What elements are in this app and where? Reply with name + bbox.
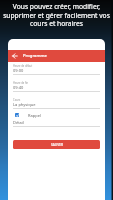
staticText: La physique	[13, 102, 36, 107]
staticText: Vous pouvez créer, modifier, supprimer e…	[3, 2, 110, 28]
staticText: Programme	[23, 53, 47, 59]
staticText: SAUVER	[51, 143, 63, 147]
button[interactable]: Rappel	[13, 111, 100, 119]
staticText: 09:40	[13, 85, 24, 90]
staticText: Cours	[13, 98, 21, 102]
staticText: 09:00	[13, 68, 24, 73]
staticText: Rappel	[28, 113, 41, 118]
staticText: Heure de fin	[13, 81, 29, 85]
staticText: Détail	[13, 120, 24, 125]
button[interactable]: SAUVER	[13, 140, 100, 149]
button[interactable]: Back	[10, 51, 20, 61]
staticText: Heure de début	[13, 64, 33, 68]
